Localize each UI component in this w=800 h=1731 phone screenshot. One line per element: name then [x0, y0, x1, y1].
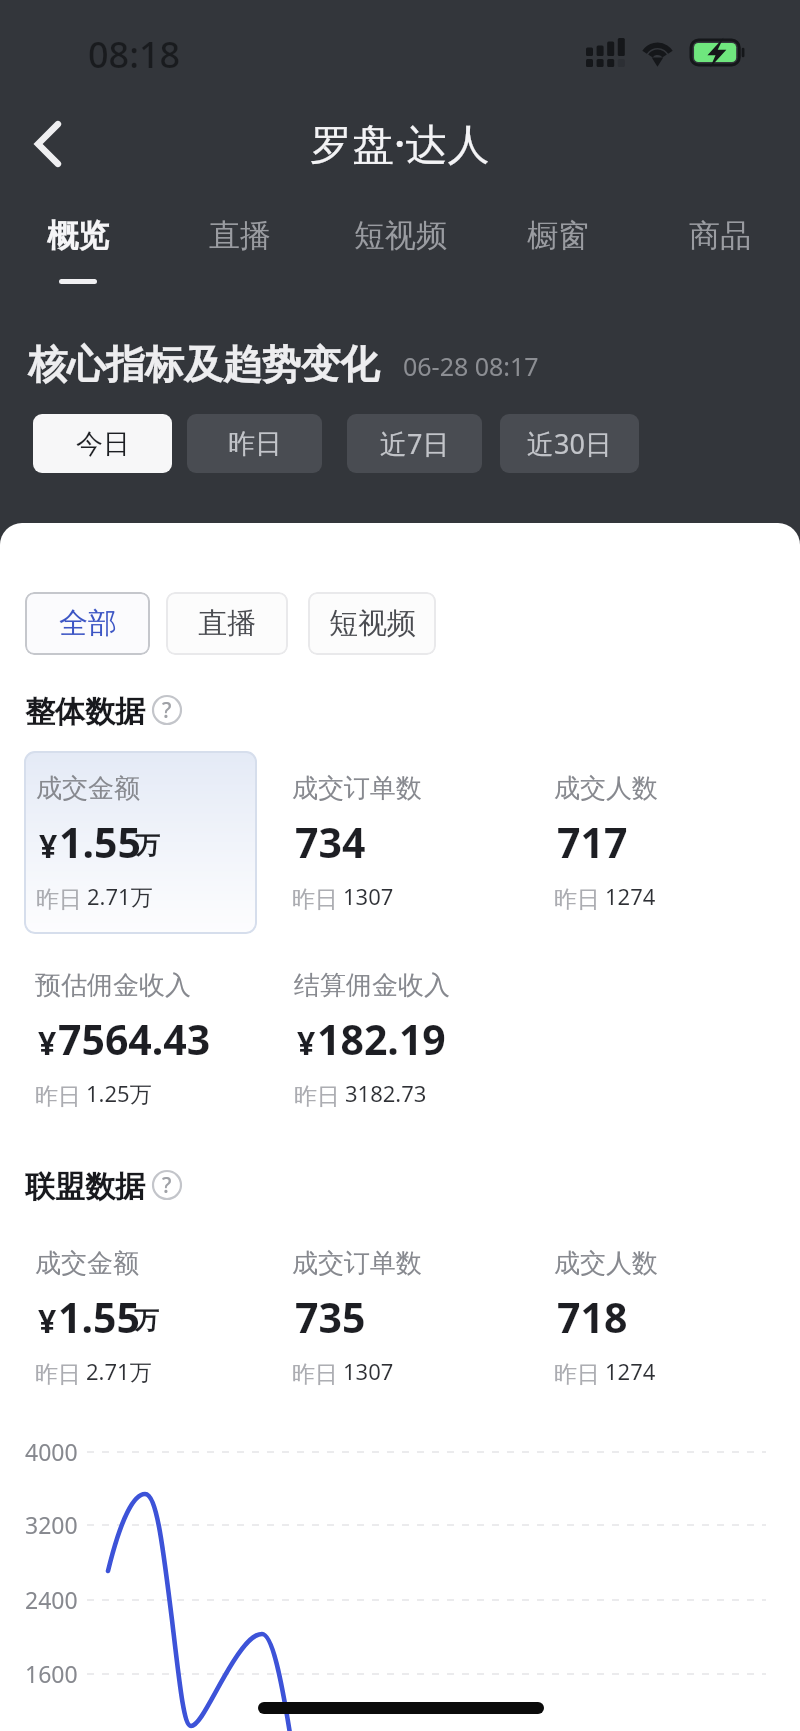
button[interactable]: 联盟数据	[25, 1168, 145, 1206]
button[interactable]: 近30日	[500, 414, 639, 473]
staticText: 3200	[25, 1509, 78, 1540]
staticText: 06-28 08:17	[403, 349, 539, 383]
button[interactable]: 成交人数	[554, 1247, 658, 1280]
button[interactable]: 成交订单数	[292, 1247, 422, 1280]
button[interactable]: 近7日	[347, 414, 482, 473]
staticText: 3182.73	[345, 1078, 427, 1108]
staticText: 昨日	[554, 1360, 600, 1389]
staticText: 昨日	[36, 885, 82, 914]
button[interactable]: 成交金额	[36, 772, 140, 805]
button[interactable]: 直播	[192, 196, 288, 296]
button[interactable]: 今日	[33, 414, 172, 473]
staticText: 7564.43	[58, 1011, 211, 1067]
staticText: 735	[295, 1289, 366, 1345]
staticText: 罗盘·达人	[310, 114, 490, 171]
staticText: ?	[162, 696, 172, 725]
staticText: 昨日	[292, 1360, 338, 1389]
staticText: 718	[557, 1289, 628, 1345]
staticText: 近30日	[527, 425, 612, 462]
staticText: 橱窗	[527, 216, 589, 255]
button[interactable]: 短视频	[335, 196, 465, 296]
staticText: 短视频	[354, 216, 447, 255]
staticText: 1600	[25, 1658, 78, 1689]
staticText: 商品	[689, 216, 751, 255]
button[interactable]: 结算佣金收入	[294, 969, 450, 1002]
button[interactable]: 成交订单数	[292, 772, 422, 805]
staticText: 734	[295, 814, 366, 870]
staticText: 直播	[209, 216, 271, 255]
staticText: 08:18	[88, 30, 181, 79]
staticText: 万	[134, 1305, 159, 1336]
staticText: 全部	[59, 605, 117, 642]
staticText: 1307	[343, 881, 394, 911]
staticText: 昨日	[35, 1360, 81, 1389]
button[interactable]: Help	[152, 695, 182, 725]
button[interactable]: 直播	[166, 592, 288, 655]
staticText: 万	[135, 830, 160, 861]
staticText: 直播	[198, 605, 256, 642]
staticText: ¥	[38, 1021, 57, 1065]
button[interactable]: 短视频	[308, 592, 436, 655]
button[interactable]: 整体数据	[25, 693, 145, 731]
staticText: 昨日	[228, 427, 282, 461]
button[interactable]: 概览	[30, 196, 126, 296]
staticText: 1.55	[59, 814, 141, 870]
staticText: 核心指标及趋势变化	[28, 340, 379, 389]
staticText: 昨日	[35, 1082, 81, 1111]
button[interactable]: 成交金额	[35, 1247, 139, 1280]
staticText: 昨日	[292, 885, 338, 914]
staticText: ¥	[38, 1299, 57, 1343]
staticText: 短视频	[329, 605, 416, 642]
staticText: 昨日	[294, 1082, 340, 1111]
staticText: 2.71万	[86, 1356, 152, 1386]
staticText: ¥	[297, 1021, 316, 1065]
staticText: 2.71万	[87, 881, 153, 911]
staticText: 昨日	[554, 885, 600, 914]
button[interactable]: Back	[17, 113, 79, 175]
staticText: 182.19	[317, 1011, 446, 1067]
button[interactable]: 预估佣金收入	[35, 969, 191, 1002]
staticText: ¥	[39, 824, 58, 868]
staticText: 1307	[343, 1356, 394, 1386]
button[interactable]: 橱窗	[510, 196, 606, 296]
staticText: 2400	[25, 1584, 78, 1615]
staticText: 4000	[25, 1436, 78, 1467]
button[interactable]: Help	[152, 1170, 182, 1200]
staticText: 今日	[76, 427, 130, 461]
staticText: 1274	[605, 1356, 656, 1386]
staticText: 概览	[47, 216, 109, 255]
staticText: ?	[162, 1171, 172, 1200]
button[interactable]: 成交人数	[554, 772, 658, 805]
button[interactable]: 全部	[25, 592, 150, 655]
staticText: 1274	[605, 881, 656, 911]
staticText: 1.25万	[86, 1078, 152, 1108]
button[interactable]	[24, 751, 257, 934]
staticText: 1.55	[58, 1289, 140, 1345]
button[interactable]: 昨日	[187, 414, 322, 473]
staticText: 近7日	[380, 425, 450, 462]
staticText: 717	[557, 814, 628, 870]
button[interactable]: 商品	[672, 196, 768, 296]
